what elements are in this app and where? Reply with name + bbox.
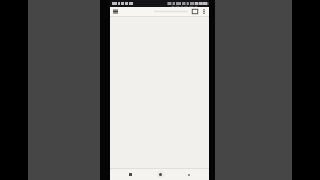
button[interactable]: Back xyxy=(124,169,136,180)
button[interactable]: Recent apps xyxy=(183,169,195,180)
button[interactable]: Navigation menu xyxy=(112,8,119,15)
button[interactable]: Home xyxy=(153,169,167,180)
button[interactable]: Tabs xyxy=(191,8,199,15)
button[interactable]: More options xyxy=(201,8,207,15)
